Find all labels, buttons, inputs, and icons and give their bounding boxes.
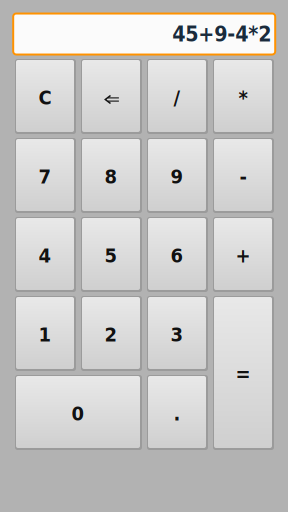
staticText: /	[173, 86, 180, 109]
staticText: 7	[38, 165, 51, 188]
button[interactable]: 7	[15, 138, 76, 213]
button[interactable]: 0	[15, 375, 142, 450]
button[interactable]: 8	[81, 138, 142, 213]
button[interactable]: =	[213, 296, 274, 450]
staticText: =	[235, 362, 250, 386]
button[interactable]: -	[213, 138, 274, 213]
staticText: 3	[170, 323, 183, 346]
button[interactable]: 2	[81, 296, 142, 371]
button[interactable]: 9	[147, 138, 208, 213]
button[interactable]: 3	[147, 296, 208, 371]
button[interactable]: Backspace	[81, 59, 142, 134]
staticText: 45+9-4*2	[172, 22, 271, 46]
staticText: 8	[104, 165, 117, 188]
button[interactable]: 6	[147, 217, 208, 292]
button[interactable]: .	[147, 375, 208, 450]
staticText: C	[38, 86, 51, 109]
button[interactable]: *	[213, 59, 274, 134]
staticText: 4	[38, 244, 51, 267]
button[interactable]: C	[15, 59, 76, 134]
button[interactable]: 5	[81, 217, 142, 292]
staticText: 2	[104, 323, 117, 346]
staticText: .	[173, 402, 180, 425]
staticText: *	[238, 86, 247, 109]
staticText: 5	[104, 244, 117, 267]
button[interactable]: 1	[15, 296, 76, 371]
staticText: -	[239, 165, 246, 188]
staticText: 1	[38, 323, 51, 346]
button[interactable]: 4	[15, 217, 76, 292]
staticText: +	[235, 244, 250, 267]
button[interactable]: +	[213, 217, 274, 292]
staticText: 6	[170, 244, 183, 267]
staticText: 9	[170, 165, 183, 188]
staticText: 0	[71, 402, 84, 425]
button[interactable]: /	[147, 59, 208, 134]
